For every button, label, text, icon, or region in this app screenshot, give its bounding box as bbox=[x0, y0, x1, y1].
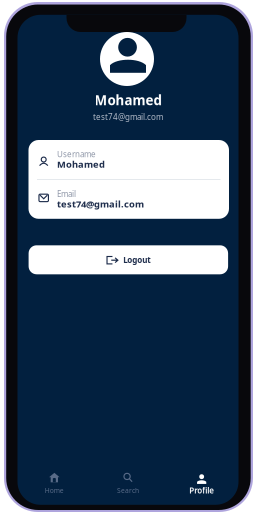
button[interactable]: Home bbox=[17, 471, 91, 497]
staticText: test74@gmail.com bbox=[93, 112, 163, 122]
staticText: Mohamed bbox=[94, 91, 161, 109]
staticText: Username bbox=[57, 149, 96, 159]
button[interactable]: Search bbox=[91, 471, 165, 497]
button[interactable]: Logout bbox=[29, 245, 228, 274]
staticText: Home bbox=[45, 486, 64, 495]
button[interactable]: Profile bbox=[165, 471, 238, 497]
staticText: Mohamed bbox=[57, 158, 105, 170]
staticText: Profile bbox=[189, 485, 214, 496]
staticText: test74@gmail.com bbox=[57, 198, 144, 210]
staticText: Logout bbox=[123, 254, 150, 265]
staticText: Email bbox=[57, 188, 76, 199]
staticText: Search bbox=[117, 486, 139, 495]
